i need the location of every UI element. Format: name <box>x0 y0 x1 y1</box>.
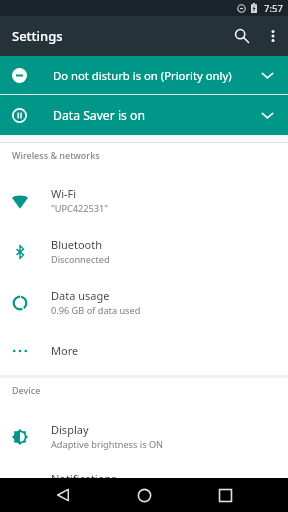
staticText: Data usage <box>51 288 110 303</box>
staticText: Display <box>51 422 89 437</box>
staticText: 0.96 GB of data used <box>51 304 141 317</box>
staticText: 7:57 <box>264 2 283 15</box>
button[interactable]: More <box>0 328 288 373</box>
button[interactable]: Do not disturb is on (Priority only) <box>0 56 288 94</box>
button[interactable]: Bluetooth <box>0 226 288 277</box>
button[interactable]: Data usage <box>0 277 288 328</box>
button[interactable]: Back <box>43 478 83 512</box>
button[interactable]: Wi-Fi <box>0 175 288 226</box>
staticText: More <box>51 343 79 358</box>
staticText: Wireless & networks <box>12 149 100 161</box>
staticText: Data Saver is on <box>53 107 145 124</box>
staticText: Do not disturb is on (Priority only) <box>53 68 232 83</box>
staticText: Adaptive brightness is ON <box>51 438 164 451</box>
button[interactable]: Home <box>124 478 164 512</box>
button[interactable]: Data Saver is on <box>0 95 288 135</box>
button[interactable]: Notifications <box>0 462 288 478</box>
staticText: Notifications <box>51 471 117 478</box>
staticText: Settings <box>12 27 63 45</box>
staticText: Device <box>12 384 41 396</box>
staticText: Bluetooth <box>51 237 103 252</box>
staticText: "UPC422531" <box>51 202 109 215</box>
button[interactable]: Search <box>226 20 258 52</box>
button[interactable]: Display <box>0 411 288 462</box>
button[interactable]: Recents <box>205 478 245 512</box>
staticText: Disconnected <box>51 253 110 266</box>
button[interactable]: More options <box>258 21 288 51</box>
staticText: Wi-Fi <box>51 186 77 201</box>
